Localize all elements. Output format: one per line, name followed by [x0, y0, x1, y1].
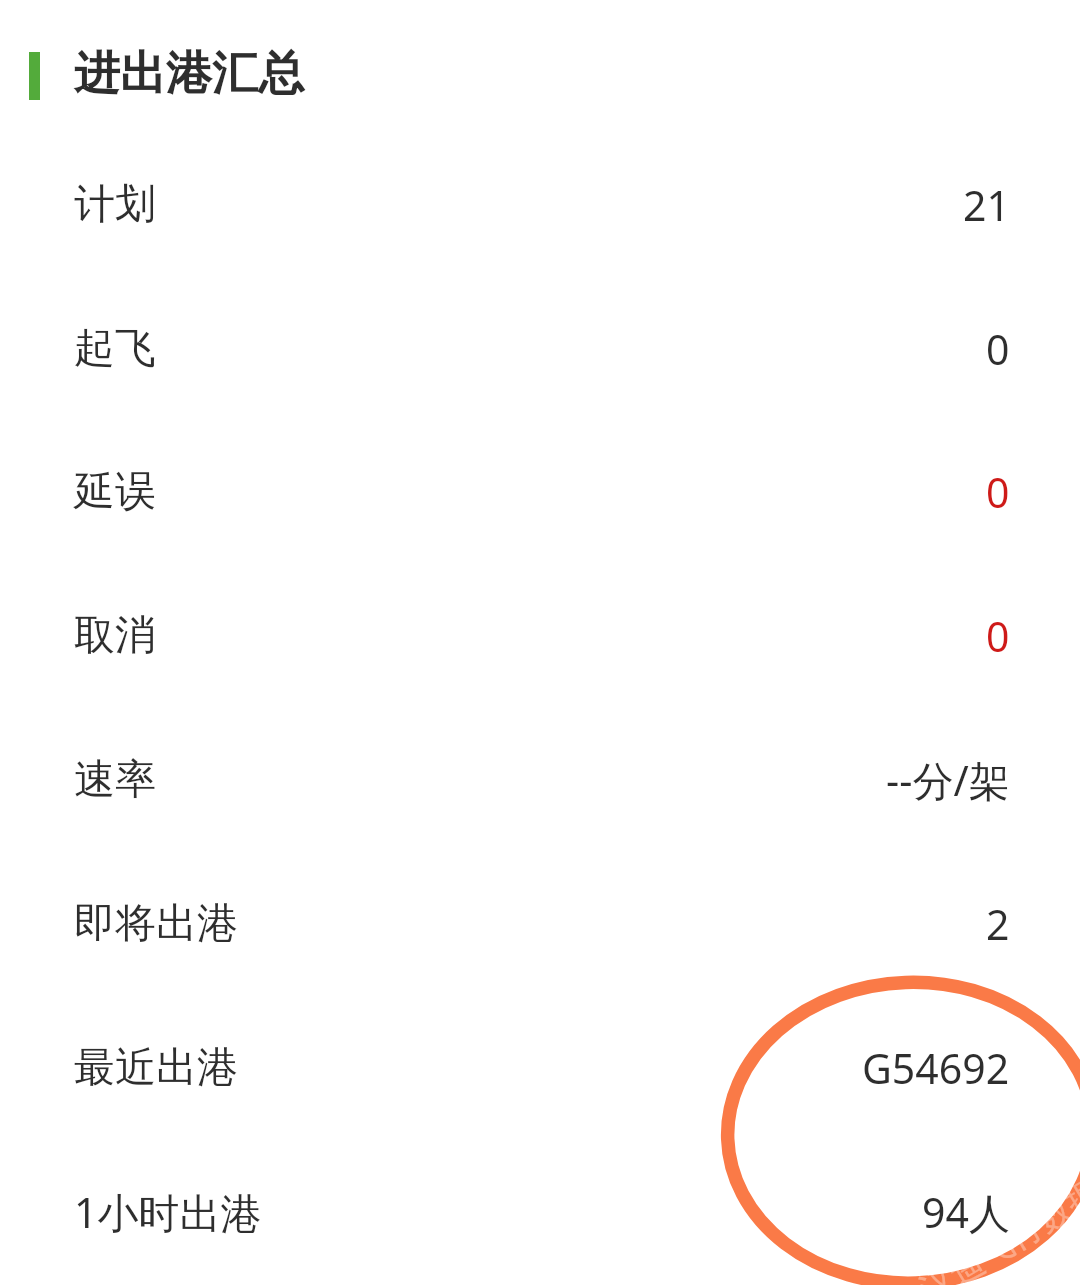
staticText: 0 — [986, 321, 1010, 377]
staticText: 0 — [986, 608, 1010, 664]
staticText: 进出港汇总 — [74, 45, 304, 103]
staticText: 取消 — [74, 610, 156, 662]
staticText: 延误 — [74, 466, 156, 518]
button[interactable]: 起飞 — [0, 302, 1080, 396]
staticText: --分/架 — [886, 752, 1010, 808]
staticText: 21 — [963, 177, 1010, 233]
button[interactable]: 即将出港 — [0, 877, 1080, 971]
staticText: 94人 — [922, 1184, 1010, 1240]
staticText: 汉遥飞行数据 — [912, 1169, 1080, 1285]
staticText: 2 — [986, 896, 1010, 952]
button[interactable]: 速率 — [0, 733, 1080, 827]
staticText: 1小时出港 — [74, 1184, 262, 1240]
button[interactable]: 1小时出港 — [0, 1165, 1080, 1259]
other: Highlight marker — [0, 0, 1080, 1285]
staticText: 即将出港 — [74, 898, 238, 950]
staticText: 0 — [986, 464, 1010, 520]
button[interactable]: 计划 — [0, 158, 1080, 252]
button[interactable]: 取消 — [0, 589, 1080, 683]
staticText: G54692 — [862, 1040, 1010, 1096]
button[interactable]: 进出港汇总 — [0, 0, 1080, 152]
staticText: 速率 — [74, 754, 156, 806]
button[interactable]: 延误 — [0, 445, 1080, 539]
staticText: 起飞 — [74, 323, 156, 375]
button[interactable]: 最近出港 — [0, 1021, 1080, 1115]
staticText: 最近出港 — [74, 1042, 238, 1094]
staticText: 计划 — [74, 179, 156, 231]
